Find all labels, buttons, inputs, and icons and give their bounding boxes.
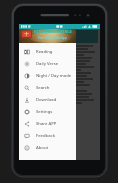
- staticText: Feedback: [36, 133, 56, 139]
- button[interactable]: Share APP: [19, 118, 76, 130]
- button[interactable]: KING JAMES BIBLE: [19, 24, 76, 43]
- button[interactable]: Feedback: [19, 130, 76, 142]
- staticText: Reading: [36, 49, 53, 55]
- staticText: Share APP: [36, 121, 57, 127]
- button[interactable]: Night / Day mode: [19, 70, 76, 82]
- staticText: Daily Verse: [36, 61, 59, 67]
- staticText: Settings: [36, 109, 53, 115]
- button[interactable]: Search: [19, 82, 76, 94]
- staticText: Download: [36, 97, 57, 103]
- staticText: KING JAMES BIBLE: [34, 29, 72, 35]
- button[interactable]: Settings: [19, 106, 76, 118]
- button[interactable]: Daily Verse: [19, 58, 76, 70]
- staticText: About: [36, 145, 49, 151]
- staticText: Free Offline Bible App: [38, 36, 67, 40]
- button[interactable]: Reading: [19, 46, 76, 58]
- staticText: Night / Day mode: [36, 73, 72, 79]
- staticText: Search: [36, 85, 50, 91]
- button[interactable]: Download: [19, 94, 76, 106]
- button[interactable]: About: [19, 142, 76, 154]
